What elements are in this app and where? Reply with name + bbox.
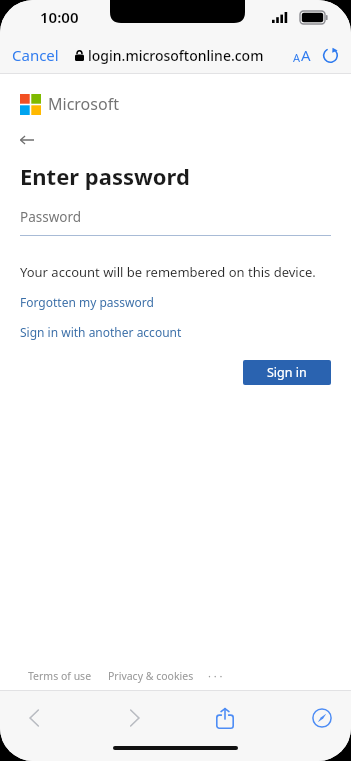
staticText: login.microsoftonline.com: [88, 46, 264, 65]
button[interactable]: More: [208, 664, 223, 687]
staticText: 10:00: [40, 7, 79, 27]
staticText: Password: [20, 208, 82, 226]
button[interactable]: Forgotten my password: [20, 291, 154, 313]
staticText: Privacy & cookies: [108, 669, 194, 683]
button[interactable]: Forward: [113, 697, 155, 739]
staticText: · · ·: [208, 668, 223, 683]
button[interactable]: Share: [204, 697, 246, 739]
button[interactable]: Cancel: [0, 39, 71, 71]
button[interactable]: Reload: [318, 43, 343, 68]
button[interactable]: Privacy & cookies: [108, 665, 194, 687]
button[interactable]: Text size: [289, 41, 315, 69]
button[interactable]: Sign in: [243, 360, 331, 385]
staticText: Enter password: [20, 161, 190, 191]
staticText: Terms of use: [28, 669, 92, 683]
staticText: Cancel: [12, 45, 59, 65]
button[interactable]: Tabs: [301, 697, 343, 739]
button[interactable]: Back: [14, 128, 40, 152]
staticText: Sign in: [267, 364, 307, 381]
staticText: A: [293, 50, 301, 65]
button[interactable]: Password: [20, 208, 331, 236]
staticText: Forgotten my password: [20, 294, 154, 310]
button[interactable]: Terms of use: [28, 665, 92, 687]
button[interactable]: Sign in with another account: [20, 321, 182, 343]
staticText: Your account will be remembered on this …: [20, 263, 316, 281]
staticText: Microsoft: [48, 93, 119, 115]
staticText: A: [301, 45, 311, 65]
staticText: Sign in with another account: [20, 324, 182, 340]
button[interactable]: Back: [13, 697, 55, 739]
